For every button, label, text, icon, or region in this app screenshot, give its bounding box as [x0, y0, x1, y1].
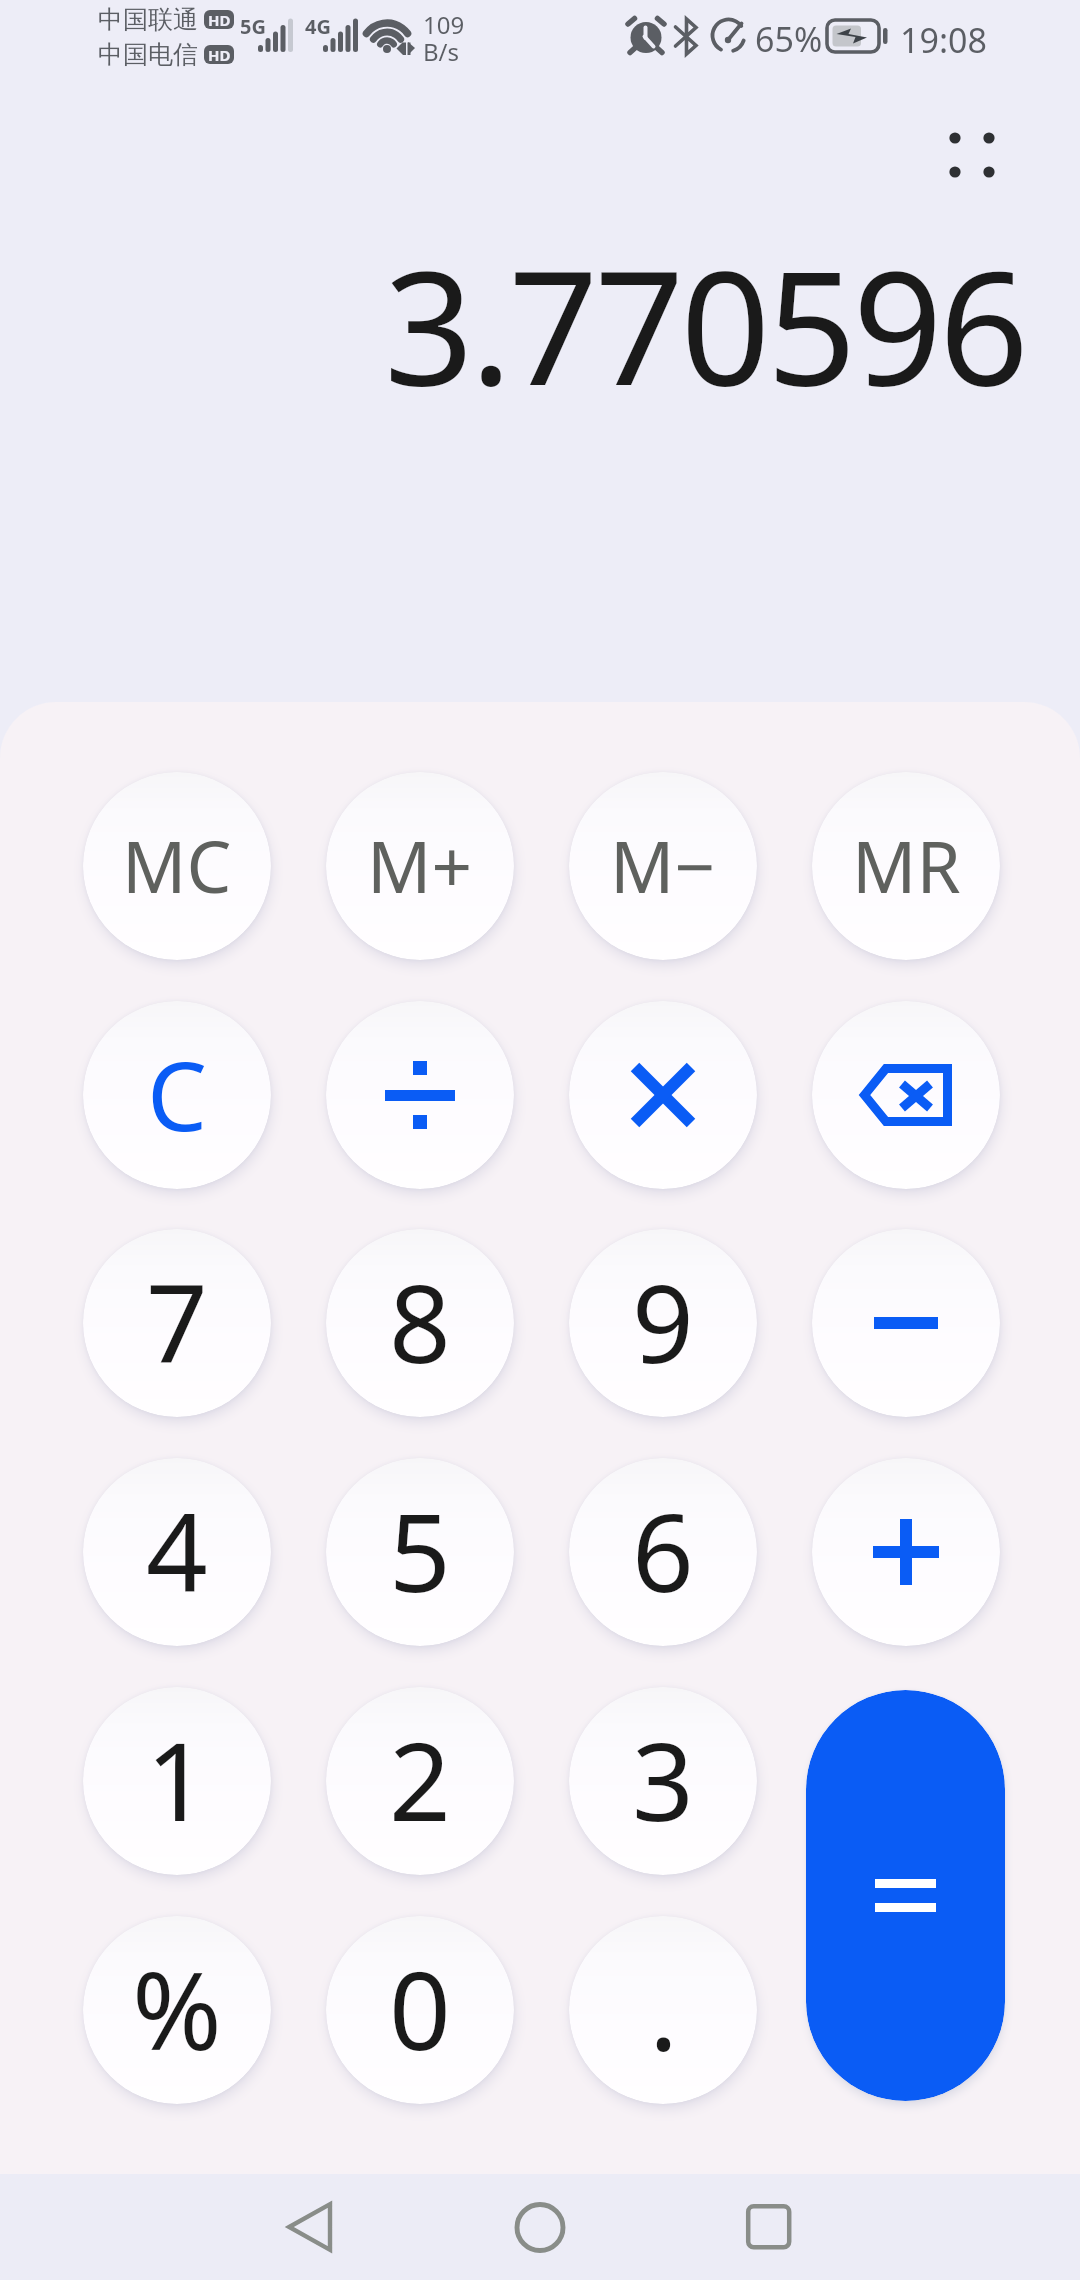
staticText: M+ [367, 817, 473, 914]
button[interactable]: 8 [326, 1229, 514, 1417]
staticText: 中国电信 [98, 39, 198, 70]
staticText: 6 [632, 1477, 694, 1624]
button[interactable]: Backspace [812, 1001, 1000, 1189]
button[interactable]: Back [248, 2174, 370, 2280]
staticText: 中国联通 [98, 4, 198, 35]
button[interactable]: M− [569, 772, 757, 960]
staticText: MC [122, 817, 232, 914]
staticText: 0 [389, 1935, 451, 2082]
staticText: MR [852, 817, 961, 914]
button[interactable]: 7 [83, 1229, 271, 1417]
button[interactable]: Minus [812, 1229, 1000, 1417]
button[interactable]: 6 [569, 1458, 757, 1646]
staticText: M− [610, 817, 716, 914]
button[interactable]: More options [920, 103, 1024, 207]
button[interactable]: 1 [83, 1687, 271, 1875]
button[interactable]: 3 [569, 1687, 757, 1875]
button[interactable]: Equals [806, 1690, 1005, 2101]
button[interactable]: % [83, 1916, 271, 2104]
button[interactable]: Recents [708, 2174, 830, 2280]
staticText: 1 [146, 1706, 208, 1853]
staticText: C [147, 1029, 208, 1158]
staticText: 7 [146, 1248, 208, 1395]
button[interactable]: . [569, 1916, 757, 2104]
staticText: . [649, 1935, 678, 2082]
button[interactable]: MR [812, 772, 1000, 960]
staticText: 8 [389, 1248, 451, 1395]
button[interactable]: 0 [326, 1916, 514, 2104]
staticText: 3 [632, 1706, 694, 1853]
button[interactable]: 2 [326, 1687, 514, 1875]
button[interactable]: Plus [812, 1458, 1000, 1646]
button[interactable]: 9 [569, 1229, 757, 1417]
button[interactable]: C [83, 1001, 271, 1189]
staticText: 65% [755, 16, 823, 62]
staticText: 2 [389, 1706, 451, 1853]
staticText: % [132, 1935, 222, 2082]
button[interactable]: M+ [326, 772, 514, 960]
button[interactable]: 4 [83, 1458, 271, 1646]
staticText: 4 [146, 1477, 208, 1624]
button[interactable]: Multiply [569, 1001, 757, 1189]
button[interactable]: Home [479, 2174, 601, 2280]
button[interactable]: Divide [326, 1001, 514, 1189]
staticText: HD [208, 45, 231, 64]
button[interactable]: 5 [326, 1458, 514, 1646]
staticText: HD [208, 10, 231, 29]
button[interactable]: MC [83, 772, 271, 960]
staticText: 19:08 [900, 17, 987, 63]
staticText: 5 [389, 1477, 451, 1624]
staticText: 4G [305, 13, 331, 40]
staticText: 5G [240, 13, 266, 40]
staticText: 9 [632, 1248, 694, 1395]
staticText: 109 [423, 8, 465, 41]
staticText: 3.770596 [383, 217, 1025, 431]
staticText: B/s [423, 35, 460, 68]
